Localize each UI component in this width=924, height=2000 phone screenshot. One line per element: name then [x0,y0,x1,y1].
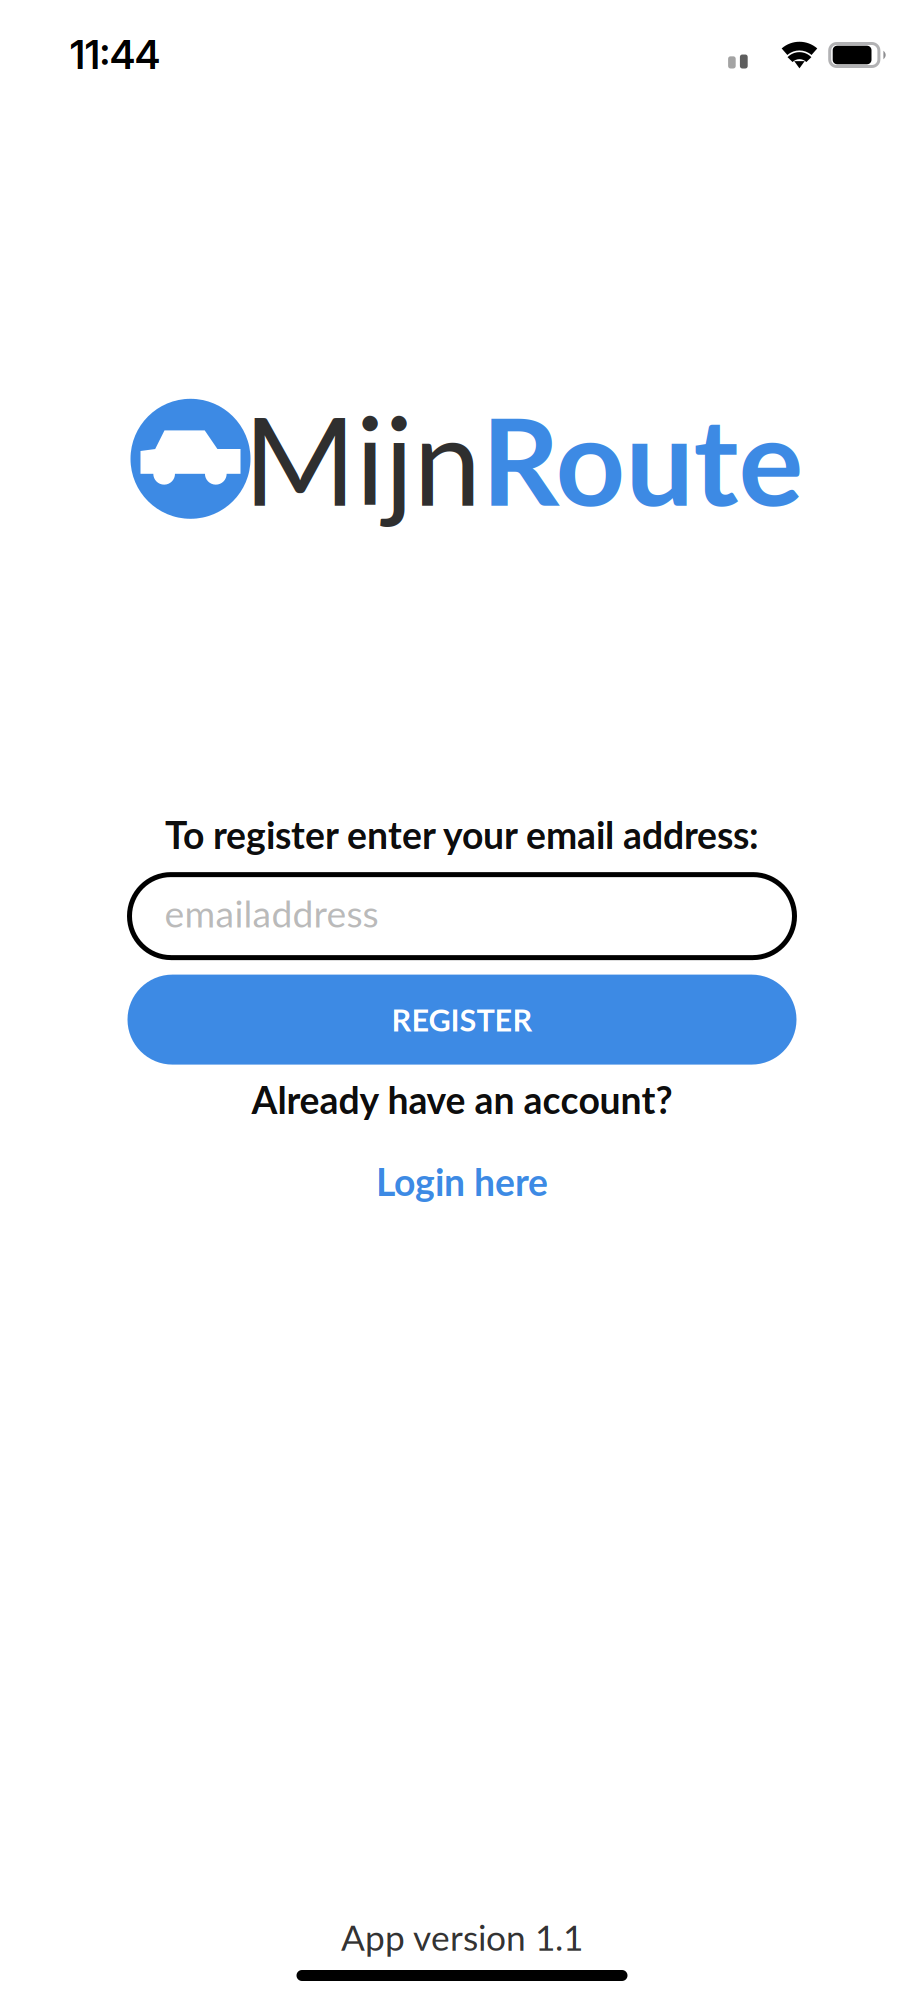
staticText: To register enter your email address: [165,812,759,857]
staticText: 11:44 [70,32,160,78]
button[interactable]: Login here [376,1162,548,1202]
staticText: emailaddress [164,891,378,935]
button[interactable]: REGISTER [127,975,796,1065]
staticText: REGISTER [391,1001,532,1038]
staticText: Route [481,386,803,532]
staticText: Already have an account? [251,1077,672,1122]
staticText: Login here [376,1159,548,1204]
staticText: Mijn [243,386,481,532]
button[interactable]: Email address [129,875,794,958]
staticText: App version 1.1 [341,1916,583,1958]
